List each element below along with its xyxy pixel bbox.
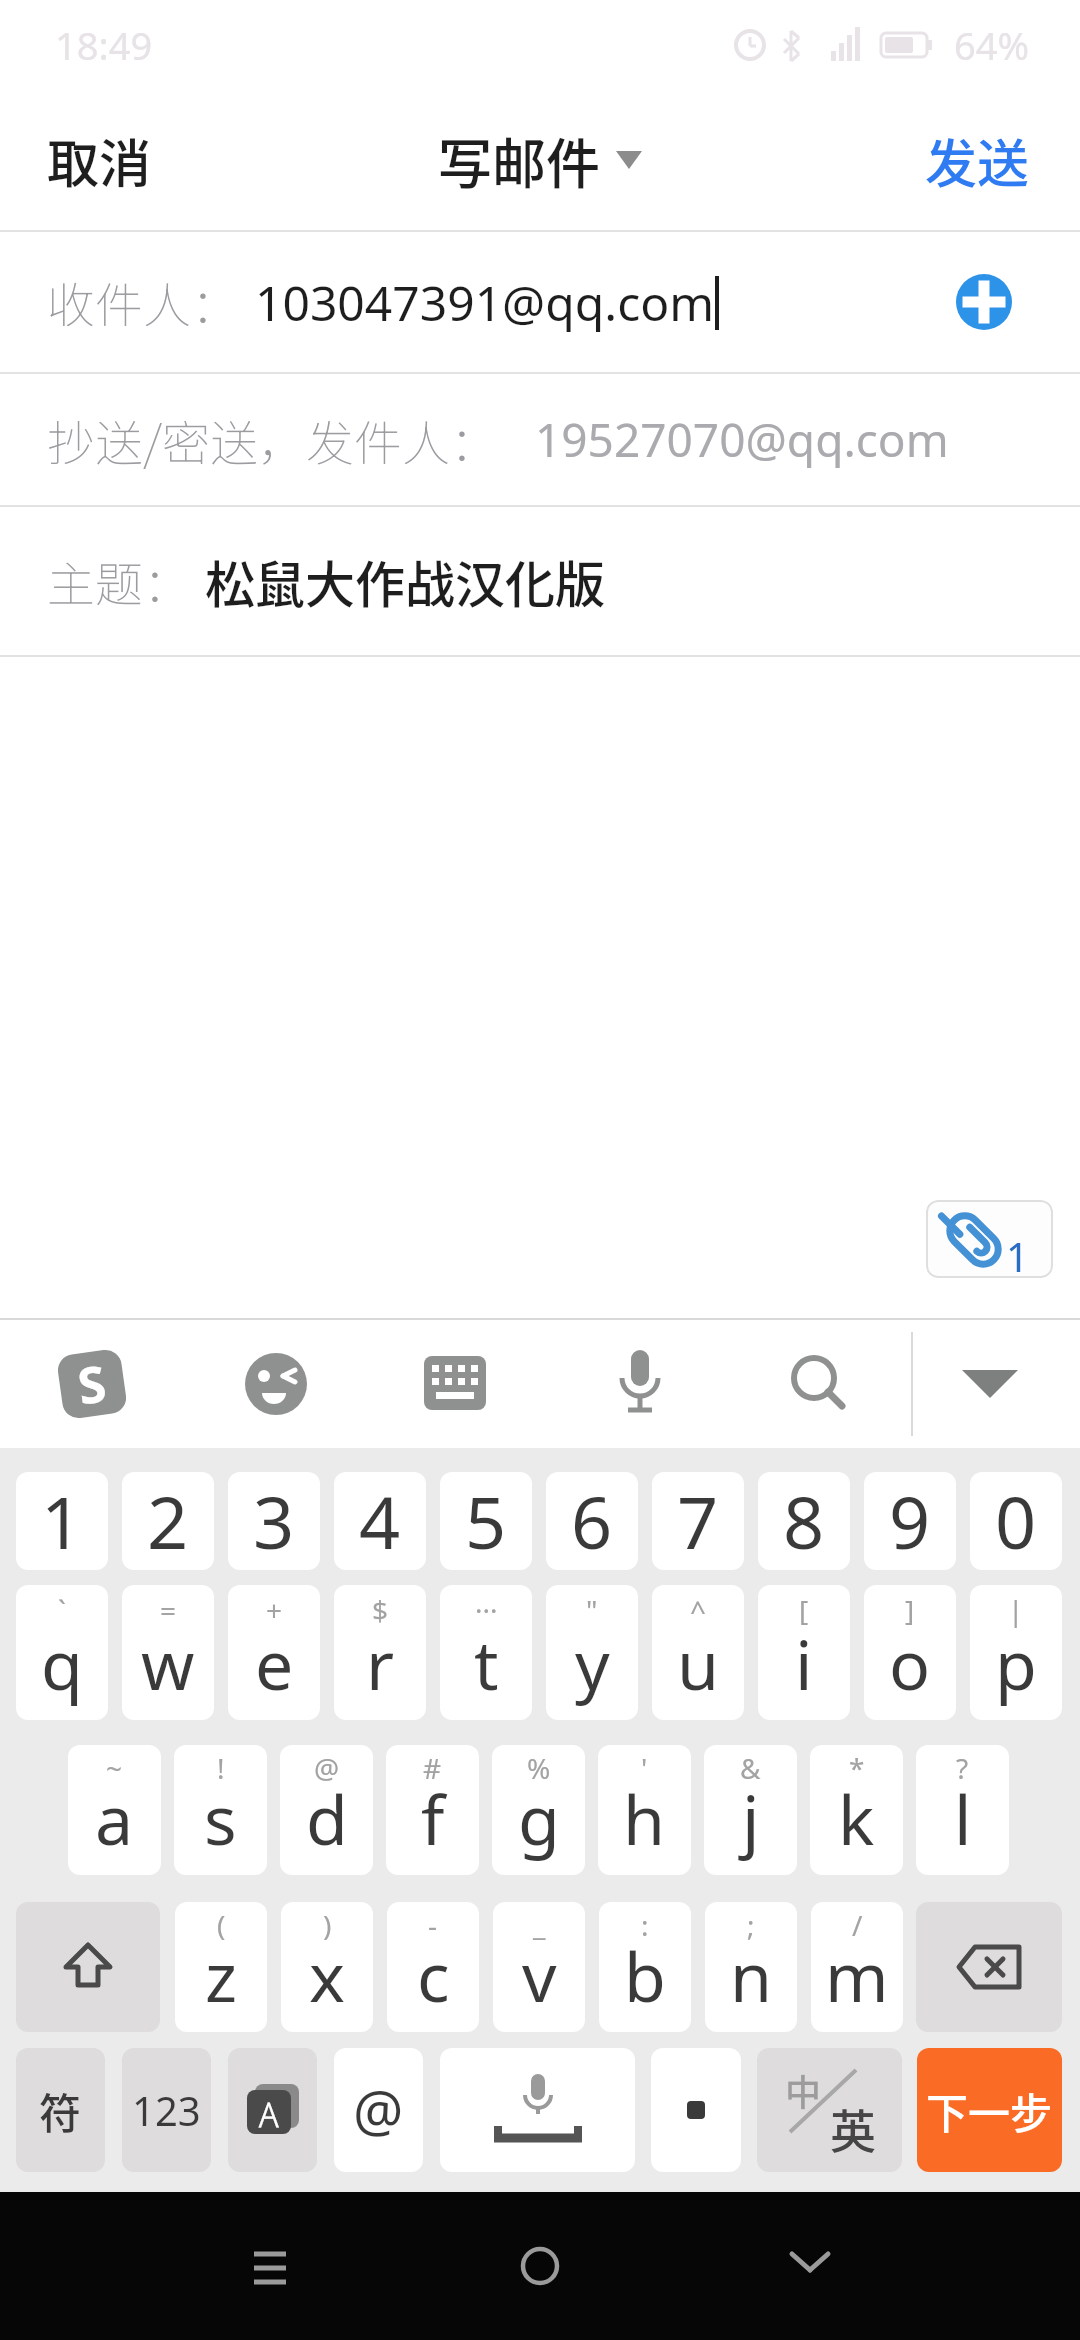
- button[interactable]: -: [387, 1902, 479, 2032]
- button[interactable]: [16, 1902, 160, 2032]
- button[interactable]: ···: [440, 1585, 532, 1720]
- button[interactable]: 中: [757, 2048, 902, 2172]
- button[interactable]: [612, 1350, 668, 1420]
- button[interactable]: ": [546, 1585, 638, 1720]
- staticText: 5: [465, 1472, 507, 1570]
- button[interactable]: 8: [758, 1472, 850, 1570]
- button[interactable]: 123: [122, 2048, 211, 2172]
- button[interactable]: A: [228, 2048, 317, 2172]
- button[interactable]: $: [334, 1585, 426, 1720]
- button[interactable]: [916, 1902, 1062, 2032]
- button[interactable]: 1: [16, 1472, 108, 1570]
- button[interactable]: 1: [0, 657, 1080, 1318]
- button[interactable]: _: [493, 1902, 585, 2032]
- staticText: ': [641, 1749, 648, 1787]
- button[interactable]: [424, 1356, 486, 1410]
- button[interactable]: [440, 2048, 635, 2172]
- staticText: h: [623, 1772, 666, 1865]
- button[interactable]: `: [16, 1585, 108, 1720]
- button[interactable]: (: [175, 1902, 267, 2032]
- button[interactable]: 9: [864, 1472, 956, 1570]
- staticText: &: [740, 1749, 761, 1787]
- button[interactable]: ': [598, 1745, 691, 1875]
- staticText: @: [353, 2072, 404, 2148]
- staticText: =: [160, 1591, 177, 1629]
- button[interactable]: [518, 2244, 562, 2288]
- staticText: ]: [905, 1591, 915, 1629]
- staticText: 19527070@qq.com: [535, 408, 949, 471]
- button[interactable]: [: [758, 1585, 850, 1720]
- staticText: ": [586, 1591, 598, 1629]
- staticText: p: [995, 1617, 1037, 1710]
- button[interactable]: [962, 1370, 1020, 1404]
- button[interactable]: 主题：: [0, 507, 1080, 655]
- button[interactable]: ^: [652, 1585, 744, 1720]
- button[interactable]: 写邮件: [438, 121, 642, 199]
- staticText: !: [217, 1749, 225, 1787]
- button[interactable]: 6: [546, 1472, 638, 1570]
- staticText: 7: [677, 1472, 719, 1570]
- button[interactable]: !: [174, 1745, 267, 1875]
- staticText: 收件人：: [47, 267, 240, 337]
- button[interactable]: 1: [926, 1200, 1053, 1278]
- button[interactable]: 2: [122, 1472, 214, 1570]
- staticText: 6: [571, 1472, 613, 1570]
- button[interactable]: 取消: [47, 123, 152, 198]
- button[interactable]: @: [280, 1745, 373, 1875]
- button[interactable]: 5: [440, 1472, 532, 1570]
- staticText: 1: [1006, 1229, 1029, 1278]
- button[interactable]: [956, 274, 1012, 330]
- staticText: /: [852, 1906, 863, 1944]
- button[interactable]: =: [122, 1585, 214, 1720]
- staticText: r: [366, 1617, 395, 1710]
- button[interactable]: ?: [916, 1745, 1009, 1875]
- button[interactable]: |: [970, 1585, 1062, 1720]
- staticText: 103047391@qq.com: [255, 270, 715, 335]
- staticText: A: [259, 2088, 279, 2137]
- staticText: ): [323, 1906, 332, 1944]
- button[interactable]: ]: [864, 1585, 956, 1720]
- button[interactable]: 收件人：: [0, 232, 1080, 372]
- button[interactable]: 发送: [925, 123, 1030, 198]
- button[interactable]: 3: [228, 1472, 320, 1570]
- button[interactable]: @: [334, 2048, 423, 2172]
- staticText: @: [314, 1749, 340, 1787]
- button[interactable]: [790, 1354, 850, 1414]
- staticText: j: [742, 1772, 760, 1865]
- button[interactable]: :: [599, 1902, 691, 2032]
- button[interactable]: 4: [334, 1472, 426, 1570]
- staticText: 4: [359, 1472, 401, 1570]
- button[interactable]: [245, 1353, 307, 1415]
- button[interactable]: ): [281, 1902, 373, 2032]
- staticText: 64%: [954, 19, 1030, 71]
- button[interactable]: #: [386, 1745, 479, 1875]
- button[interactable]: ~: [68, 1745, 161, 1875]
- button[interactable]: 抄送/密送，发件人：: [0, 374, 1080, 505]
- button[interactable]: 0: [970, 1472, 1062, 1570]
- button[interactable]: +: [228, 1585, 320, 1720]
- button[interactable]: 符: [16, 2048, 105, 2172]
- staticText: 18:49: [55, 19, 153, 71]
- staticText: e: [255, 1617, 294, 1710]
- button[interactable]: /: [811, 1902, 903, 2032]
- button[interactable]: [788, 2250, 832, 2280]
- staticText: f: [421, 1772, 445, 1865]
- staticText: `: [58, 1591, 66, 1629]
- staticText: b: [624, 1929, 666, 2022]
- staticText: $: [372, 1591, 389, 1629]
- button[interactable]: ;: [705, 1902, 797, 2032]
- button[interactable]: 下一步: [917, 2048, 1062, 2172]
- button[interactable]: [248, 2246, 292, 2290]
- staticText: 123: [132, 2083, 201, 2137]
- button[interactable]: *: [810, 1745, 903, 1875]
- button[interactable]: %: [492, 1745, 585, 1875]
- button[interactable]: S: [57, 1349, 127, 1419]
- staticText: 2: [147, 1472, 189, 1570]
- staticText: a: [95, 1772, 134, 1865]
- button[interactable]: &: [704, 1745, 797, 1875]
- button[interactable]: [651, 2048, 741, 2172]
- staticText: [: [799, 1591, 809, 1629]
- staticText: 0: [995, 1472, 1037, 1570]
- button[interactable]: 7: [652, 1472, 744, 1570]
- staticText: 写邮件: [438, 121, 600, 199]
